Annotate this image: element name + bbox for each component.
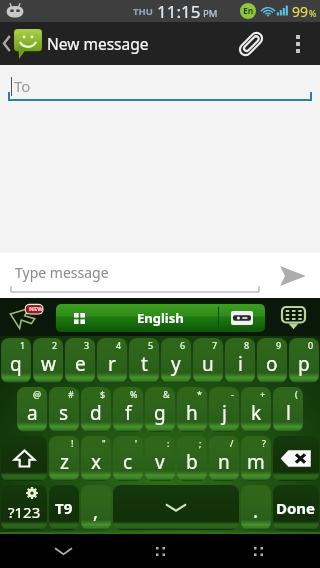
staticText: To [14, 76, 31, 96]
button[interactable]: : [145, 436, 175, 481]
staticText: j [222, 400, 227, 426]
button[interactable]: $ [81, 387, 111, 432]
staticText: ! [71, 437, 74, 449]
staticText: En [243, 5, 254, 17]
button[interactable]: ! [49, 436, 79, 481]
staticText: w [41, 351, 56, 377]
button[interactable]: # [49, 387, 79, 432]
staticText: ? [262, 437, 266, 449]
button[interactable]: More options [276, 22, 320, 65]
staticText: / [230, 437, 234, 449]
button[interactable]: shift [1, 436, 47, 481]
button[interactable]: / [209, 436, 239, 481]
button[interactable]: Recent apps [223, 534, 293, 568]
staticText: , [93, 498, 99, 524]
staticText: l [286, 400, 291, 426]
staticText: n [218, 449, 230, 475]
staticText: i [238, 351, 243, 377]
button[interactable]: . [241, 485, 271, 530]
staticText: 7 [212, 339, 218, 351]
button[interactable]: 8 [225, 338, 255, 383]
staticText: . [253, 498, 259, 524]
staticText: d [90, 400, 102, 426]
staticText: ( [295, 388, 298, 400]
staticText: 11:15 [157, 0, 201, 22]
button[interactable]: What's new [0, 298, 56, 336]
staticText: o [266, 351, 278, 377]
button[interactable]: 3 [65, 338, 95, 383]
button[interactable]: Back [28, 534, 98, 568]
button[interactable]: ; [177, 436, 207, 481]
button[interactable]: - [209, 387, 239, 432]
button[interactable]: Type message [0, 253, 264, 298]
staticText: v [155, 449, 165, 475]
button[interactable]: space [113, 485, 239, 530]
staticText: : [167, 437, 170, 449]
staticText: THU [133, 5, 153, 18]
staticText: * [197, 388, 202, 400]
staticText: - [231, 388, 234, 400]
staticText: ; [199, 437, 202, 449]
staticText: m [247, 449, 265, 475]
button[interactable]: Navigate up [0, 22, 46, 65]
button[interactable]: ' [113, 436, 143, 481]
staticText: a [27, 400, 38, 426]
button[interactable]: 5 [129, 338, 159, 383]
button[interactable]: 0 [289, 338, 319, 383]
staticText: + [260, 388, 266, 400]
button[interactable]: backspace [273, 436, 319, 481]
button[interactable]: Attach [226, 22, 276, 65]
button[interactable]: 4 [97, 338, 127, 383]
button[interactable]: Done [273, 485, 319, 530]
button[interactable]: Hide keyboard [266, 298, 320, 336]
button[interactable]: ( [273, 387, 303, 432]
staticText: % [309, 7, 317, 19]
staticText: 4 [116, 339, 122, 351]
button[interactable]: @ [17, 387, 47, 432]
staticText: $ [100, 388, 106, 400]
staticText: 3 [84, 339, 90, 351]
staticText: p [298, 351, 310, 377]
staticText: ?123 [8, 502, 41, 522]
staticText: New message [47, 33, 149, 54]
button[interactable]: Home [125, 534, 195, 568]
staticText: 9 [276, 339, 282, 351]
staticText: u [202, 351, 214, 377]
button[interactable]: ?123 [1, 485, 47, 530]
staticText: s [59, 400, 69, 426]
staticText: NEW [29, 305, 44, 313]
button[interactable]: 9 [257, 338, 287, 383]
staticText: 0 [308, 339, 314, 351]
button[interactable]: English [56, 304, 265, 332]
button[interactable]: T9 [49, 485, 79, 530]
staticText: k [251, 400, 262, 426]
button[interactable]: 2 [33, 338, 63, 383]
staticText: x [91, 449, 102, 475]
staticText: c [123, 449, 133, 475]
staticText: z [60, 449, 69, 475]
staticText: " [102, 437, 106, 449]
button[interactable]: 1 [1, 338, 31, 383]
button[interactable]: 6 [161, 338, 191, 383]
staticText: g [154, 400, 166, 426]
staticText: # [68, 388, 74, 400]
staticText: h [186, 400, 198, 426]
staticText: T9 [55, 498, 73, 518]
staticText: f [125, 400, 132, 426]
button[interactable]: + [241, 387, 271, 432]
button[interactable]: * [177, 387, 207, 432]
staticText: English [137, 309, 184, 327]
staticText: PM [203, 7, 218, 20]
button[interactable]: , [81, 485, 111, 530]
staticText: e [75, 351, 86, 377]
staticText: 2 [52, 339, 58, 351]
button[interactable]: % [113, 387, 143, 432]
button[interactable]: " [81, 436, 111, 481]
button[interactable]: & [145, 387, 175, 432]
button[interactable]: Send [264, 253, 320, 298]
button[interactable]: 7 [193, 338, 223, 383]
staticText: ' [135, 437, 138, 449]
button[interactable]: ? [241, 436, 271, 481]
staticText: 99 [292, 2, 309, 21]
staticText: 8 [244, 339, 250, 351]
